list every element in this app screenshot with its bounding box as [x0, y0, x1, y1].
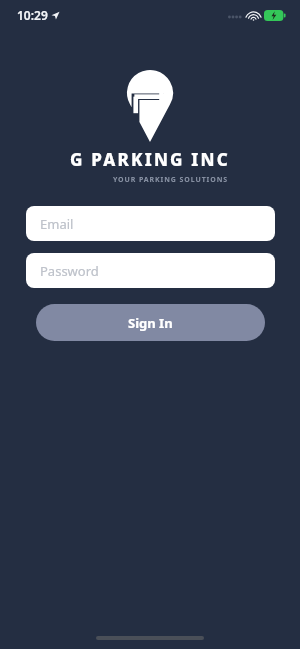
staticText: Email [40, 215, 74, 233]
button[interactable]: Sign In [36, 304, 265, 341]
staticText: Sign In [128, 314, 173, 332]
other: G Parking Inc logo [127, 70, 173, 142]
staticText: YOUR PARKING SOLUTIONS [112, 175, 228, 185]
staticText: 10:29 [17, 7, 48, 23]
staticText: Password [40, 262, 99, 280]
button[interactable]: Password [26, 253, 275, 288]
button[interactable]: Email [26, 206, 275, 241]
staticText: G PARKING INC [70, 148, 230, 171]
